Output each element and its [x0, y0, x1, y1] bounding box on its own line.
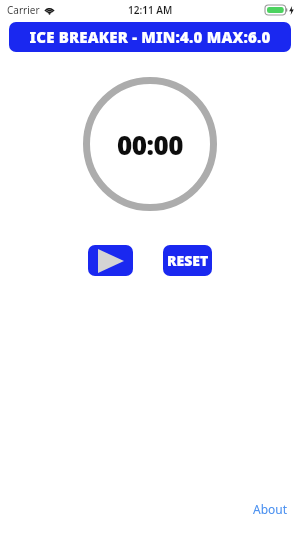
button[interactable]: About — [251, 499, 290, 519]
staticText: Carrier — [7, 3, 40, 17]
button[interactable]: ICE BREAKER - MIN:4.0 MAX:6.0 — [9, 22, 291, 52]
staticText: ICE BREAKER - MIN:4.0 MAX:6.0 — [29, 27, 271, 47]
staticText: About — [253, 501, 288, 517]
staticText: 00:00 — [117, 127, 183, 162]
staticText: 12:11 AM — [128, 3, 173, 17]
staticText: RESET — [167, 251, 209, 270]
button[interactable]: RESET — [163, 245, 212, 276]
button[interactable]: Start timer — [88, 245, 133, 276]
